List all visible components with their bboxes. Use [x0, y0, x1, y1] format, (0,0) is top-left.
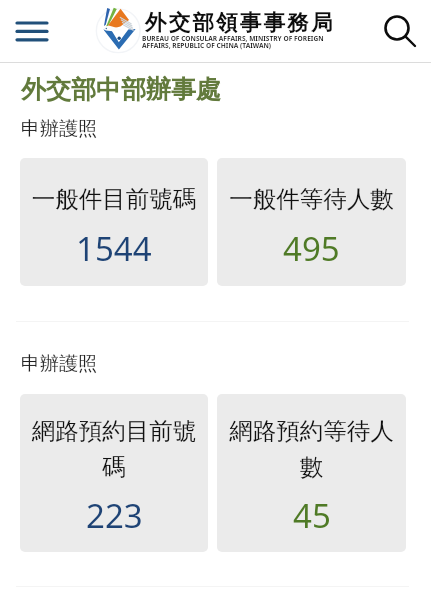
staticText: 一般件目前號碼	[28, 184, 200, 214]
staticText: 495	[283, 226, 340, 271]
button[interactable]: Bureau of Consular Affairs home	[92, 3, 336, 55]
button[interactable]: 網路預約目前號碼	[20, 394, 208, 552]
staticText: 外交部中部辦事處	[21, 74, 221, 105]
staticText: 網路預約等待人數	[225, 416, 398, 481]
staticText: 網路預約目前號碼	[28, 416, 200, 481]
staticText: BUREAU OF CONSULAR AFFAIRS, MINISTRY OF …	[142, 34, 324, 43]
staticText: 外交部領事事務局	[145, 9, 335, 36]
button[interactable]: Menu	[10, 14, 52, 48]
button[interactable]: 一般件目前號碼	[20, 158, 208, 286]
button[interactable]: 網路預約等待人數	[217, 394, 406, 552]
button[interactable]: 一般件等待人數	[217, 158, 406, 286]
staticText: 1544	[76, 226, 152, 271]
staticText: 45	[293, 493, 331, 538]
staticText: AFFAIRS, REPUBLIC OF CHINA (TAIWAN)	[142, 41, 272, 50]
staticText: 223	[86, 493, 143, 538]
staticText: 申辦護照	[21, 352, 97, 376]
staticText: 一般件等待人數	[225, 184, 398, 214]
staticText: 申辦護照	[21, 117, 97, 141]
button[interactable]: Search	[378, 9, 420, 51]
